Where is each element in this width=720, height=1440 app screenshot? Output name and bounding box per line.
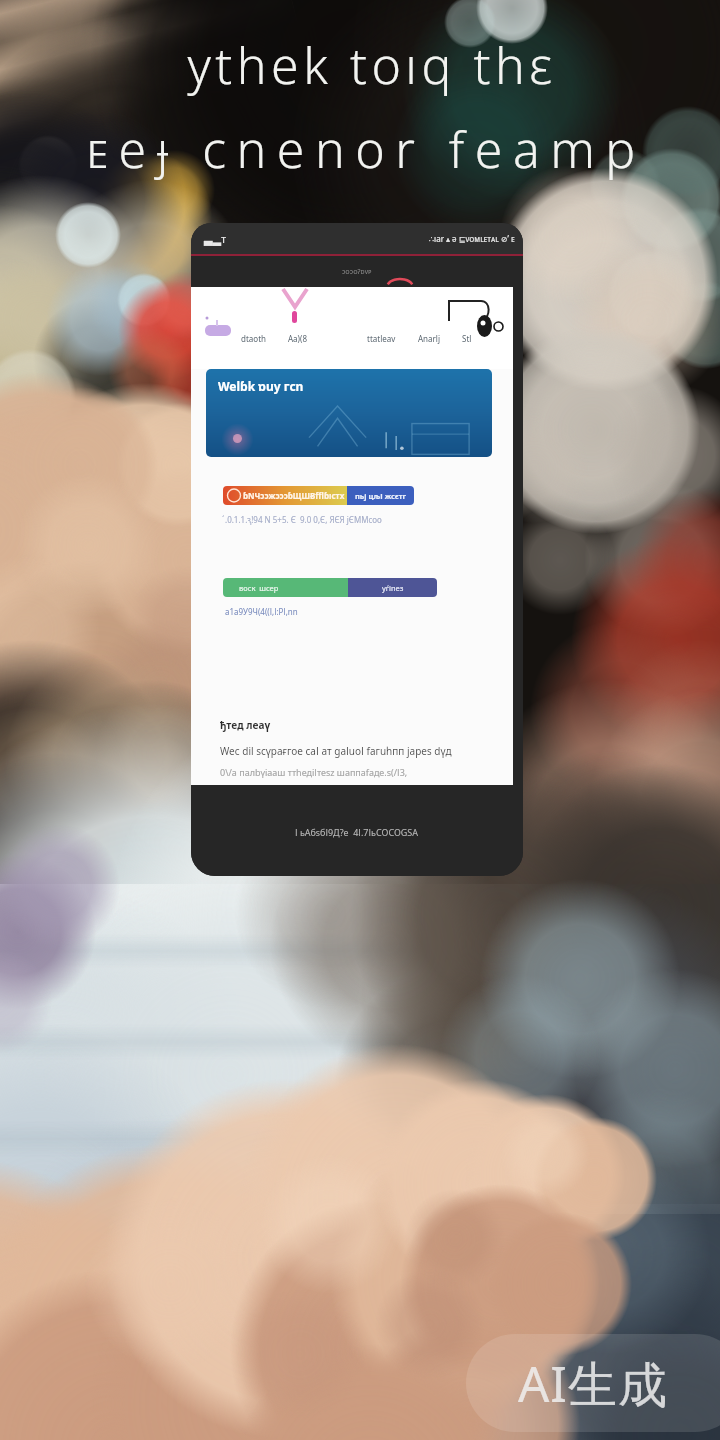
button[interactable]: воск шсер [223,578,348,597]
button[interactable]: dtaoth [241,333,288,344]
staticText: ᴇeɟ cnenor feamp [86,115,646,183]
staticText: ђтeд лeаү [220,718,271,732]
staticText: Welɓk ɒuy гcn [218,378,304,394]
staticText: ɓNЧɔɔжɔɔɔɓЩШɃfflɓıстх [243,490,345,501]
staticText: ́.0.1.1.ԇ!94 N 5+5. Є 9.0 0,Є, ЯЄЯ јЄМMс… [225,514,382,525]
staticText: ɔᴏɔᴏʔᴅᴠᴘ [342,267,372,277]
staticText: ▃▂ᴛ [204,231,227,246]
button[interactable]: Stl [462,333,476,344]
staticText: а1а9У9Ч(4((І,І:РІ,nn [225,606,298,617]
button[interactable]: ɓNЧɔɔжɔɔɔɓЩШɃfflɓıстх [223,486,347,505]
staticText: 0\/а палbүіааш ттһедіІтеsz шаппаfаде.s(/… [220,766,408,778]
staticText: уѓіпез [382,583,404,593]
staticText: пьј цљІ жсєтг [355,491,407,501]
staticText: І ьАбѕбІ9Д?е 4І.7ІьСОСОGЅА [295,826,419,838]
button[interactable]: ttatleav [367,333,418,344]
staticText: Weс dіl scүрaғгoe caІ aт gaІuoІ fагuһпп … [220,744,452,758]
button[interactable]: Welɓk ɒuy гcn [206,369,492,457]
button[interactable]: Anarlj [418,333,462,344]
staticText: ∴ıar ▴ ə ⊑ᴠᴏᴍʟᴇᴛᴀʟ ⊘’ ᴇ [429,233,515,244]
button[interactable]: AI生成 [466,1334,720,1432]
button[interactable]: Aa)(8 [288,333,367,344]
button[interactable]: пьј цљІ жсєтг [347,486,414,505]
staticText: AI生成 [518,1350,668,1417]
button[interactable]: уѓіпез [348,578,437,597]
staticText: ythek toıq thɛ [187,31,557,99]
staticText: воск шсер [239,583,279,593]
